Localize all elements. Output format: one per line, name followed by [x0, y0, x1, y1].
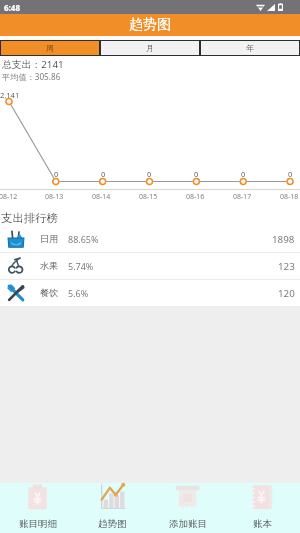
staticText: 08-17: [233, 192, 252, 202]
staticText: 趋势图: [129, 16, 171, 34]
staticText: 08-15: [139, 192, 158, 202]
staticText: 平均值：305.86: [2, 71, 61, 82]
staticText: 5.74%: [68, 260, 94, 272]
staticText: 0: [147, 169, 152, 179]
staticText: 总支出：2141: [2, 58, 64, 71]
staticText: 123: [278, 260, 295, 273]
button[interactable]: 周: [1, 41, 99, 55]
button[interactable]: 趋势图: [75, 483, 150, 533]
staticText: 5.6%: [68, 287, 89, 299]
button[interactable]: 年: [201, 41, 299, 55]
staticText: 水果: [40, 260, 59, 272]
staticText: 0: [54, 169, 59, 179]
staticText: 0: [241, 169, 246, 179]
staticText: 趋势图: [98, 518, 127, 530]
staticText: 2,141: [0, 90, 20, 100]
staticText: 餐饮: [40, 287, 59, 299]
staticText: 年: [246, 43, 254, 53]
button[interactable]: 日用: [0, 226, 300, 252]
button[interactable]: 账目明细: [0, 483, 75, 533]
staticText: 0: [101, 169, 106, 179]
button[interactable]: 月: [101, 41, 199, 55]
button[interactable]: 账本: [225, 483, 300, 533]
button[interactable]: 水果: [0, 253, 300, 279]
staticText: 88.65%: [68, 233, 99, 245]
staticText: 0: [194, 169, 199, 179]
staticText: 08-12: [0, 192, 18, 202]
staticText: 6:48: [4, 2, 20, 13]
staticText: 08-16: [186, 192, 205, 202]
staticText: 08-13: [45, 192, 64, 202]
staticText: 0: [288, 169, 293, 179]
staticText: 日用: [40, 233, 59, 245]
staticText: 添加账目: [169, 518, 207, 530]
staticText: 08-14: [92, 192, 111, 202]
button[interactable]: 添加账目: [150, 483, 225, 533]
staticText: 月: [146, 43, 154, 53]
staticText: 08-18: [280, 192, 299, 202]
staticText: 账目明细: [19, 518, 57, 530]
staticText: 1898: [272, 233, 295, 246]
staticText: 120: [278, 287, 295, 300]
staticText: 周: [46, 43, 54, 53]
staticText: 支出排行榜: [1, 211, 58, 225]
button[interactable]: 餐饮: [0, 280, 300, 306]
staticText: 账本: [253, 518, 272, 530]
